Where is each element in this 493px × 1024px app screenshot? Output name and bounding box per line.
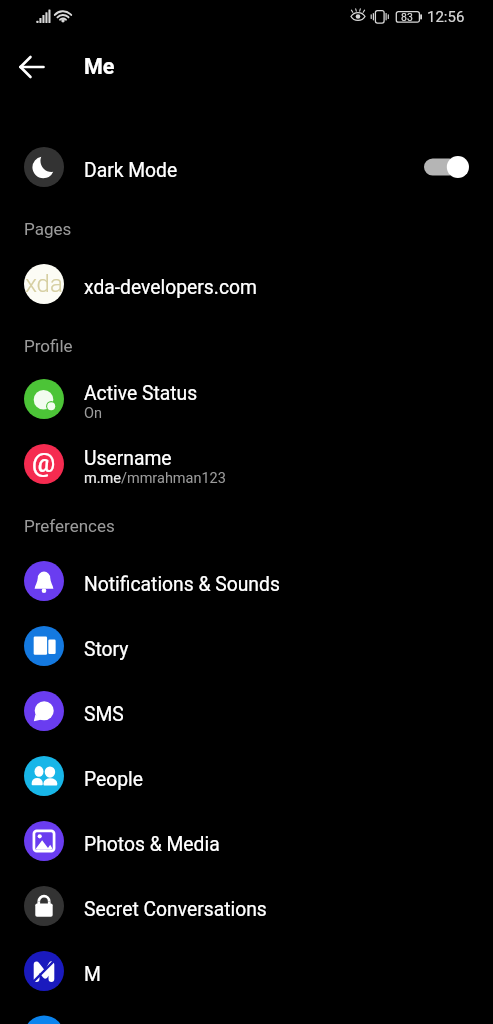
staticText: m.me/mmrahman123	[84, 470, 226, 487]
button[interactable]: Notifications & Sounds	[0, 548, 493, 613]
button[interactable]: M	[0, 938, 493, 1003]
button[interactable]: SMS	[0, 678, 493, 743]
staticText: Dark Mode	[84, 159, 178, 182]
staticText: @	[32, 448, 56, 478]
button[interactable]: Story	[0, 613, 493, 678]
button[interactable]: @	[0, 431, 493, 496]
staticText: Preferences	[24, 516, 115, 536]
staticText: Notifications & Sounds	[84, 573, 280, 596]
button[interactable]: Dark Mode	[0, 134, 493, 199]
staticText: SMS	[84, 703, 124, 726]
staticText: On	[84, 405, 102, 422]
button[interactable]: People	[0, 743, 493, 808]
staticText: Secret Conversations	[84, 898, 267, 921]
staticText: People	[84, 768, 144, 791]
button[interactable]	[0, 1003, 493, 1024]
staticText: xda-developers.com	[84, 276, 257, 299]
staticText: Story	[84, 638, 129, 661]
staticText: 83	[401, 11, 413, 23]
staticText: Pages	[24, 219, 72, 239]
button[interactable]: Photos & Media	[0, 808, 493, 873]
button[interactable]: xda	[0, 251, 493, 316]
staticText: Username	[84, 447, 172, 470]
button[interactable]: Back	[8, 43, 56, 91]
staticText: xda	[24, 270, 64, 298]
button[interactable]: Secret Conversations	[0, 873, 493, 938]
staticText: Me	[84, 54, 115, 79]
staticText: Profile	[24, 336, 73, 356]
button[interactable]: Active Status	[0, 366, 493, 431]
staticText: Active Status	[84, 382, 198, 405]
staticText: 12:56	[427, 8, 465, 26]
staticText: M	[84, 963, 101, 986]
staticText: Photos & Media	[84, 833, 220, 856]
